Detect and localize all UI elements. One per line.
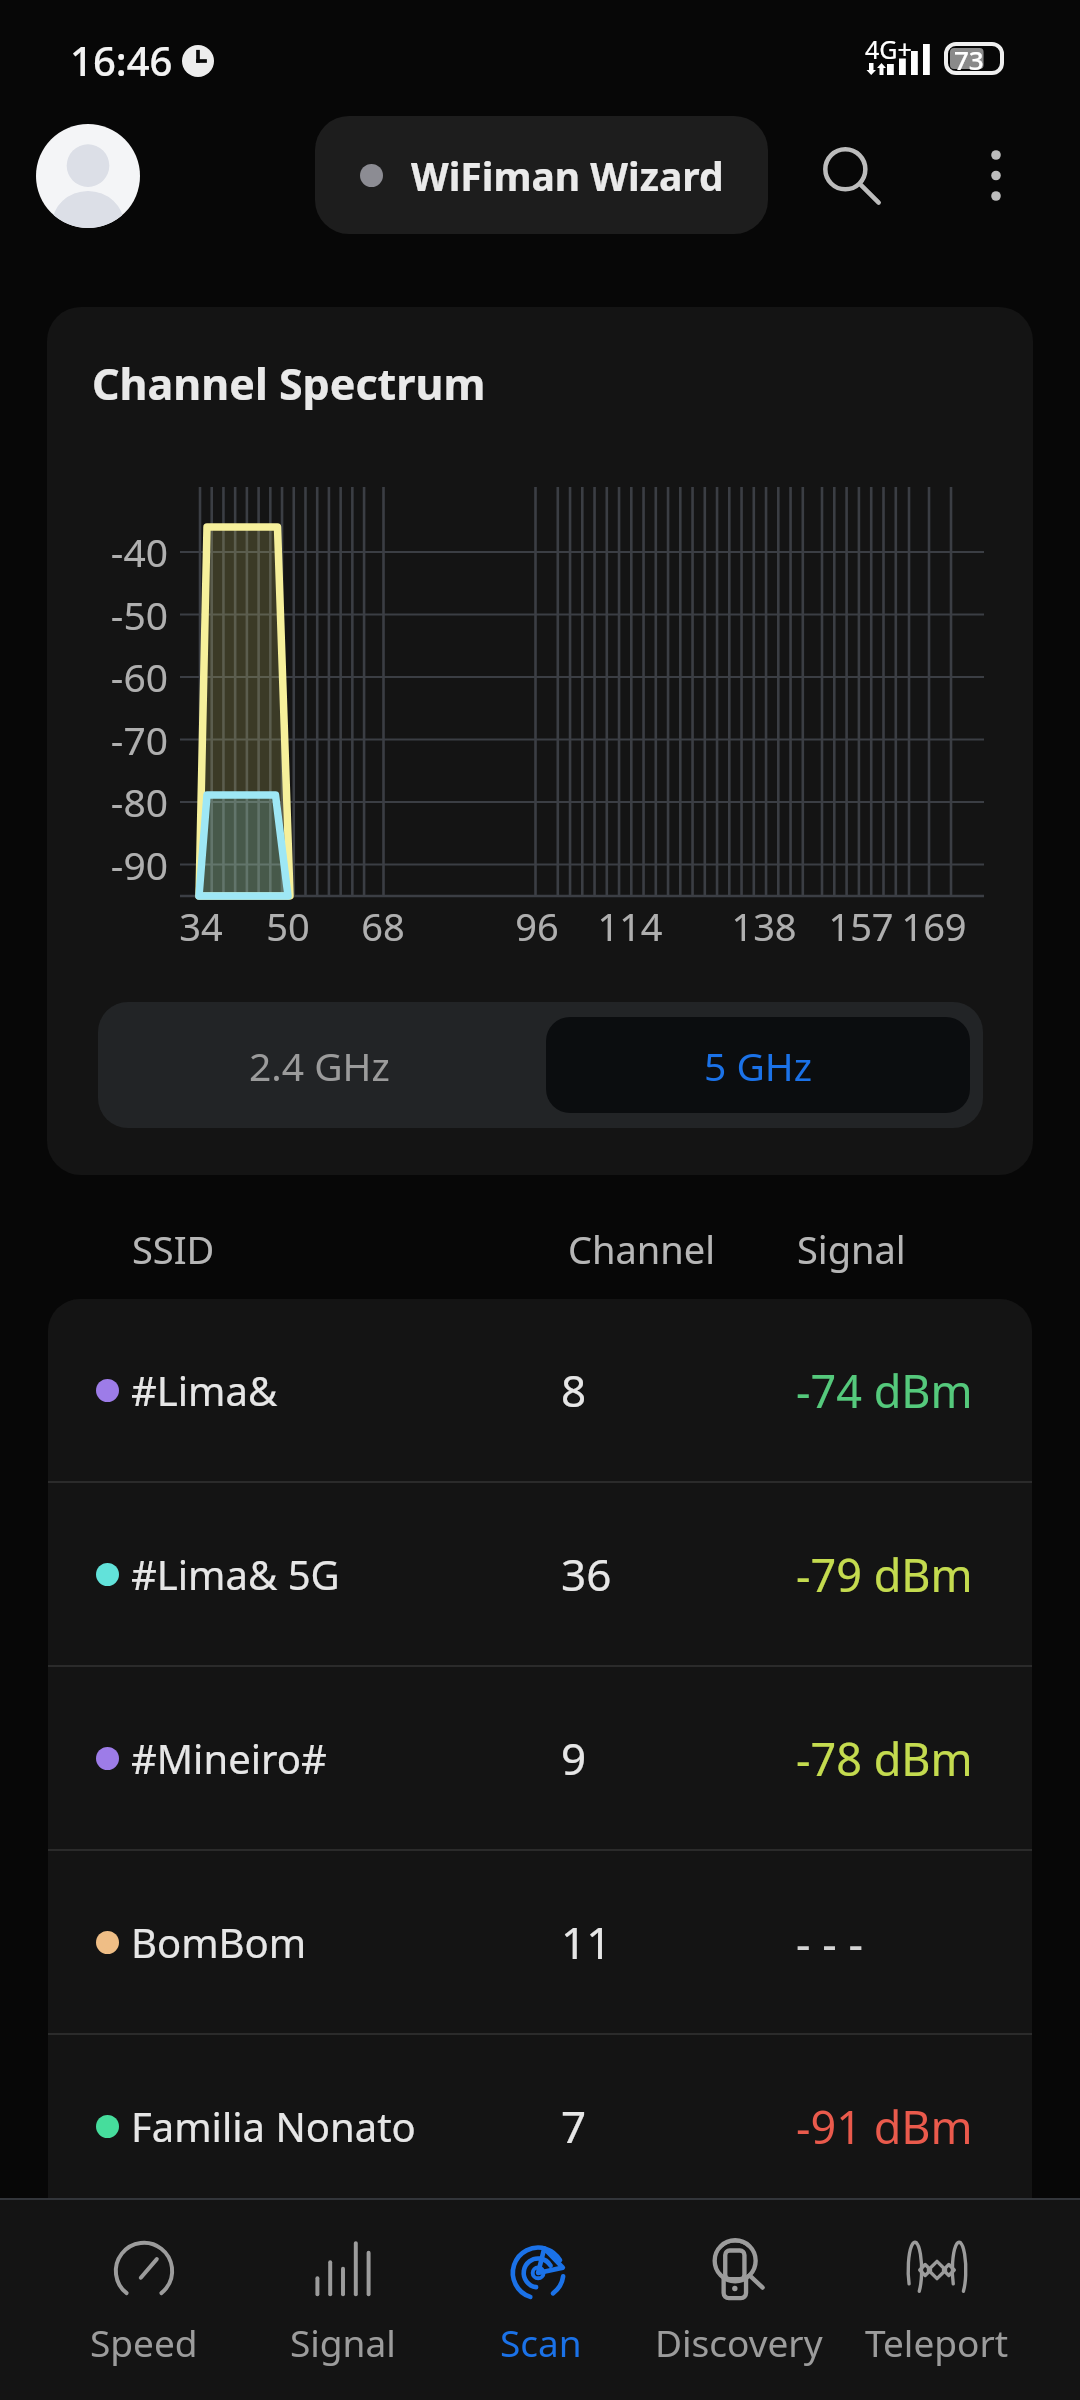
staticText: 8	[561, 1360, 587, 1420]
staticText: Signal	[290, 2317, 396, 2367]
staticText: 2.4 GHz	[249, 1039, 390, 1092]
button[interactable]: Teleport	[838, 2200, 1036, 2400]
staticText: -70	[59, 713, 168, 766]
staticText: -80	[59, 775, 168, 828]
staticText: -40	[59, 525, 168, 578]
staticText: Familia Nonato	[131, 2099, 416, 2153]
button[interactable]: WiFiman Wizard	[315, 116, 768, 234]
staticText: 157	[826, 900, 896, 952]
staticText: Discovery	[655, 2317, 823, 2367]
staticText: Channel Spectrum	[92, 354, 486, 413]
staticText: BomBom	[131, 1915, 307, 1969]
staticText: 114	[595, 900, 665, 952]
staticText: 96	[502, 900, 572, 952]
staticText: 11	[561, 1912, 612, 1972]
staticText: -50	[59, 588, 168, 641]
staticText: 169	[899, 900, 969, 952]
staticText: SSID	[132, 1223, 215, 1275]
staticText: 7	[561, 2096, 587, 2156]
staticText: -79 dBm	[796, 1544, 973, 1605]
button[interactable]: Familia Nonato	[48, 2035, 1032, 2217]
button[interactable]: #Lima&	[48, 1299, 1032, 1481]
staticText: 34	[166, 900, 236, 952]
button[interactable]: Signal	[243, 2200, 442, 2400]
button[interactable]: #Mineiro#	[48, 1667, 1032, 1849]
staticText: Signal	[797, 1223, 906, 1275]
button[interactable]: Discovery	[640, 2200, 838, 2400]
staticText: 4G+	[865, 32, 912, 66]
staticText: -78 dBm	[796, 1728, 973, 1789]
staticText: WiFiman Wizard	[411, 149, 724, 202]
button[interactable]: More options	[951, 131, 1041, 221]
staticText: #Lima& 5G	[131, 1547, 340, 1601]
staticText: 73	[954, 42, 984, 75]
staticText: Channel	[568, 1223, 716, 1275]
staticText: Scan	[500, 2317, 582, 2367]
staticText: 50	[253, 900, 323, 952]
button[interactable]: 2.4 GHz	[98, 1002, 540, 1128]
staticText: Teleport	[865, 2317, 1009, 2367]
button[interactable]: BomBom	[48, 1851, 1032, 2033]
staticText: - - -	[796, 1912, 863, 1973]
staticText: -60	[59, 650, 168, 703]
staticText: 36	[561, 1544, 612, 1604]
staticText: 68	[348, 900, 418, 952]
staticText: 16:46	[70, 33, 173, 87]
button[interactable]: Profile	[36, 124, 140, 228]
staticText: -90	[59, 838, 168, 891]
staticText: #Lima&	[131, 1363, 278, 1417]
staticText: #Mineiro#	[131, 1731, 327, 1785]
button[interactable]: #Lima& 5G	[48, 1483, 1032, 1665]
staticText: Speed	[90, 2317, 198, 2367]
staticText: 5 GHz	[704, 1039, 813, 1092]
staticText: 9	[561, 1728, 587, 1788]
button[interactable]: Scan	[442, 2200, 640, 2400]
staticText: 138	[729, 900, 799, 952]
staticText: -74 dBm	[796, 1360, 973, 1421]
button[interactable]: Speed	[44, 2200, 243, 2400]
button[interactable]: 5 GHz	[546, 1017, 970, 1113]
staticText: -91 dBm	[796, 2096, 973, 2157]
button[interactable]: Search	[807, 131, 897, 221]
